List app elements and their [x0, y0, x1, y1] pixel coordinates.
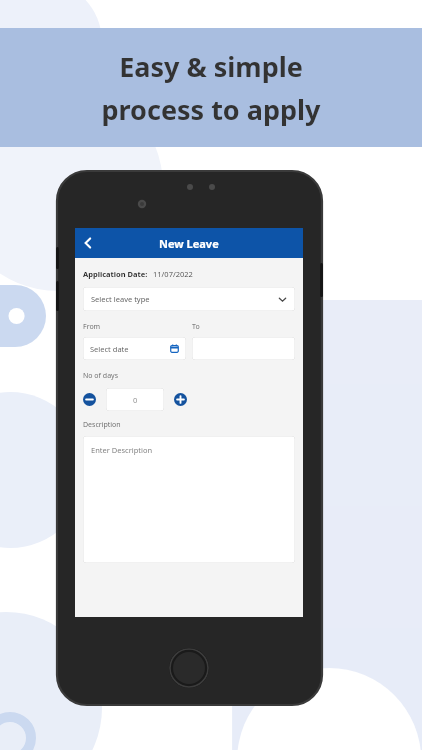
button[interactable]: Enter Description	[83, 436, 295, 563]
staticText: 0	[133, 395, 138, 405]
staticText: No of days	[83, 371, 118, 381]
button[interactable]: Decrease days	[83, 393, 96, 406]
button[interactable]: Home	[169, 648, 209, 688]
button[interactable]	[192, 337, 295, 360]
button[interactable]: Back	[75, 230, 101, 256]
staticText: 11/07/2022	[153, 269, 193, 279]
button[interactable]: 0	[106, 388, 164, 411]
staticText: To	[192, 322, 295, 332]
staticText: From	[83, 322, 186, 332]
button[interactable]: Select date	[83, 337, 186, 360]
staticText: Enter Description	[91, 445, 153, 455]
button[interactable]: Select leave type	[83, 287, 295, 311]
staticText: Select date	[90, 344, 129, 354]
staticText: Select leave type	[91, 294, 150, 304]
staticText: Easy & simple	[119, 48, 303, 85]
staticText: process to apply	[101, 91, 321, 128]
button[interactable]: Increase days	[174, 393, 187, 406]
staticText: New Leave	[159, 236, 219, 251]
staticText: Application Date:	[83, 269, 148, 279]
staticText: Description	[83, 420, 121, 430]
